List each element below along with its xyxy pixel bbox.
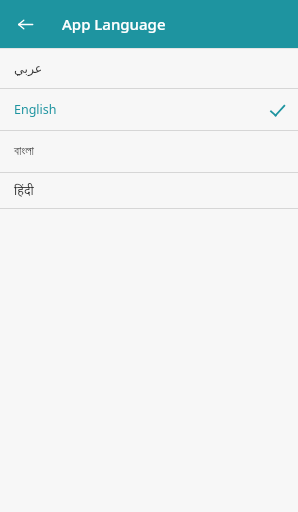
button[interactable]: Back [11,10,39,38]
staticText: हिंदी [14,182,34,199]
staticText: English [14,101,57,118]
staticText: বাংলা [14,145,34,158]
button[interactable]: বাংলা [0,131,298,172]
button[interactable]: हिंदी [0,173,298,208]
staticText: عربي [14,61,43,76]
button[interactable]: عربي [0,49,298,88]
staticText: App Language [62,14,166,34]
button[interactable]: English [0,89,298,130]
